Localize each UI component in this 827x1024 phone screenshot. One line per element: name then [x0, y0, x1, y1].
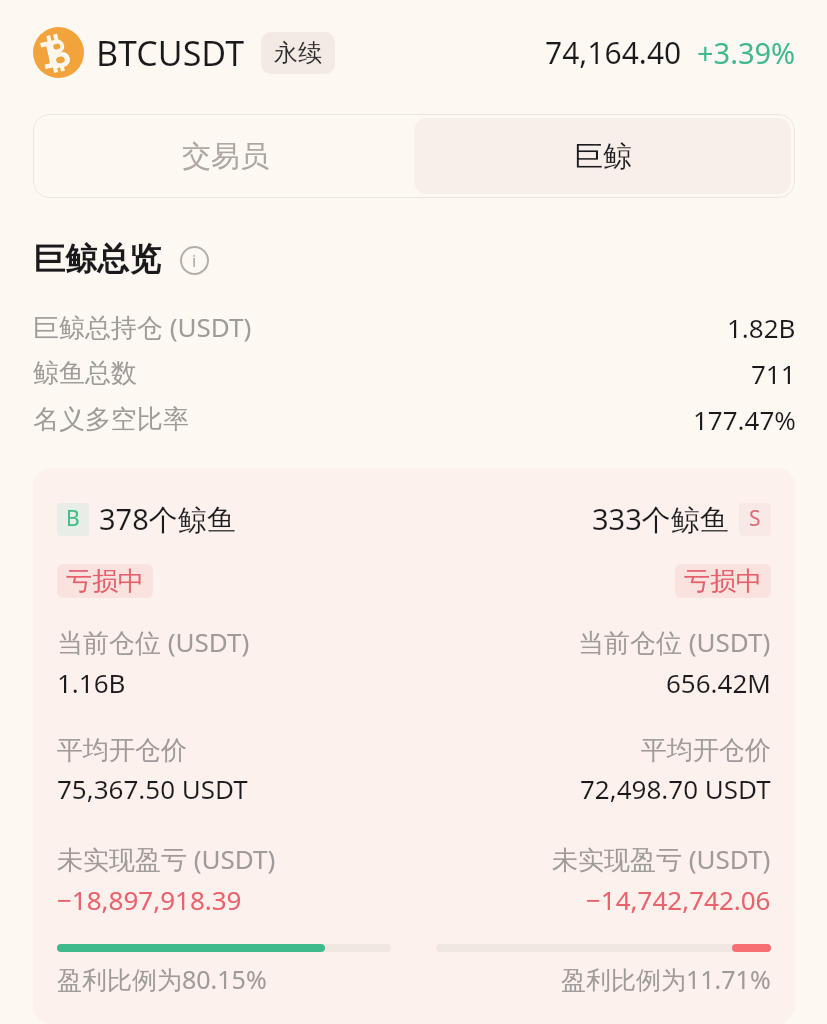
- staticText: 1.16B: [57, 665, 126, 700]
- staticText: S: [749, 504, 761, 533]
- button[interactable]: 巨鲸: [414, 118, 791, 194]
- staticText: 378个鲸鱼: [99, 499, 236, 539]
- staticText: 巨鲸总览: [33, 239, 161, 279]
- staticText: 亏损中: [684, 565, 762, 598]
- staticText: 未实现盈亏 (USDT): [552, 841, 771, 877]
- staticText: 亏损中: [66, 565, 144, 598]
- staticText: 177.47%: [693, 402, 796, 437]
- staticText: 平均开仓价: [57, 734, 187, 767]
- staticText: 巨鲸总持仓 (USDT): [33, 309, 252, 345]
- staticText: 巨鲸: [574, 138, 632, 175]
- staticText: 未实现盈亏 (USDT): [57, 841, 276, 877]
- staticText: 盈利比例为11.71%: [561, 962, 771, 996]
- staticText: 656.42M: [666, 665, 771, 700]
- staticText: +3.39%: [697, 33, 796, 72]
- staticText: BTCUSDT: [96, 30, 245, 76]
- staticText: 当前仓位 (USDT): [578, 624, 771, 660]
- staticText: 711: [751, 356, 796, 391]
- staticText: i: [192, 249, 197, 272]
- staticText: 333个鲸鱼: [592, 499, 729, 539]
- staticText: 75,367.50 USDT: [57, 771, 248, 806]
- button[interactable]: 交易员: [37, 118, 414, 194]
- staticText: 鲸鱼总数: [33, 357, 137, 390]
- staticText: −14,742,742.06: [586, 882, 771, 917]
- staticText: 交易员: [182, 138, 269, 175]
- staticText: 名义多空比率: [33, 403, 189, 436]
- staticText: 平均开仓价: [641, 734, 771, 767]
- staticText: 盈利比例为80.15%: [57, 962, 267, 996]
- button[interactable]: BTCUSDT: [33, 27, 335, 78]
- staticText: 永续: [274, 38, 322, 68]
- staticText: 74,164.40: [545, 32, 682, 73]
- staticText: B: [66, 504, 80, 533]
- staticText: 1.82B: [727, 310, 796, 345]
- button[interactable]: B: [33, 468, 795, 1024]
- staticText: 当前仓位 (USDT): [57, 624, 250, 660]
- staticText: −18,897,918.39: [57, 882, 242, 917]
- button[interactable]: Info: [180, 246, 209, 275]
- staticText: 72,498.70 USDT: [580, 771, 771, 806]
